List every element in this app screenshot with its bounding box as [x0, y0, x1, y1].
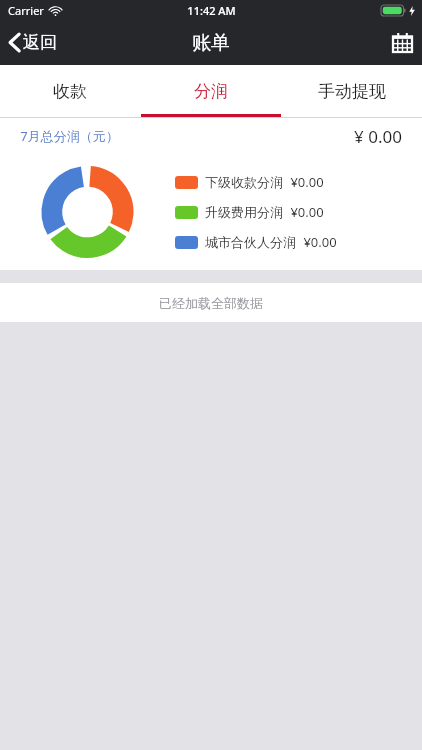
staticText: ¥0.00	[290, 203, 324, 221]
button[interactable]: 分润	[140, 65, 281, 117]
staticText: 已经加载全部数据	[159, 295, 263, 311]
staticText: ¥ 0.00	[354, 125, 402, 148]
staticText: 升级费用分润	[205, 204, 283, 220]
button[interactable]: 返回	[0, 26, 69, 59]
staticText: ¥0.00	[303, 233, 337, 251]
staticText: 分润	[194, 81, 228, 102]
button[interactable]: 手动提现	[281, 65, 422, 117]
staticText: 返回	[23, 32, 57, 53]
staticText: 手动提现	[318, 81, 386, 102]
staticText: 账单	[192, 31, 230, 55]
staticText: ¥0.00	[290, 173, 324, 191]
button[interactable]: 收款	[0, 65, 140, 117]
staticText: 下级收款分润	[205, 174, 283, 190]
staticText: 城市合伙人分润	[205, 234, 296, 250]
staticText: 11:42 AM	[187, 3, 236, 18]
staticText: 7月总分润（元）	[20, 127, 119, 145]
button[interactable]: Calendar	[383, 23, 422, 62]
staticText: Carrier	[8, 3, 44, 18]
staticText: 收款	[53, 81, 87, 102]
